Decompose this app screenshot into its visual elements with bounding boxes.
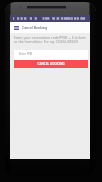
staticText: Enter PNR [19,52,33,56]
button[interactable]: Enter PNR [14,50,88,60]
staticText: Enter your reservation code/PNR — E-tick… [14,35,86,44]
button[interactable]: Open navigation menu [12,22,21,33]
button[interactable]: CANCEL BOOKING [14,60,88,68]
staticText: Cancel Booking [22,25,48,30]
staticText: CANCEL BOOKING [37,62,65,66]
